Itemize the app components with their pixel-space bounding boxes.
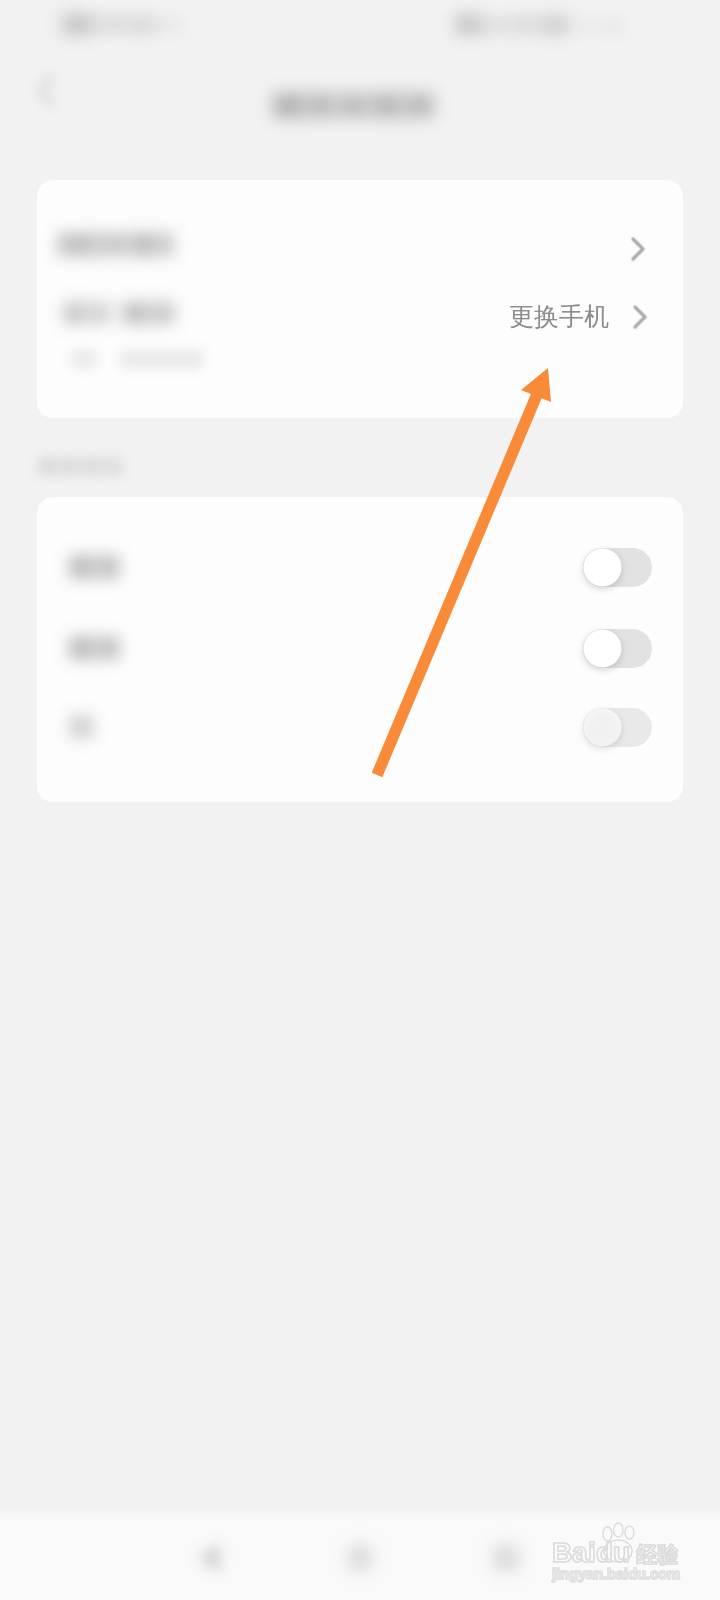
button[interactable]: Toggle [37,548,683,588]
staticText: 更换手机 [509,301,609,332]
button[interactable]: 更换手机 [37,290,683,418]
button[interactable]: Toggle [37,629,683,669]
button[interactable]: Toggle [583,708,652,747]
button[interactable]: Toggle [583,629,652,668]
button[interactable]: Toggle [37,708,683,748]
button[interactable]: Home [333,1531,387,1585]
button[interactable] [37,180,683,290]
button[interactable]: Back [184,1531,238,1585]
button[interactable]: Recent apps [479,1531,533,1585]
button[interactable]: Toggle [583,548,652,587]
